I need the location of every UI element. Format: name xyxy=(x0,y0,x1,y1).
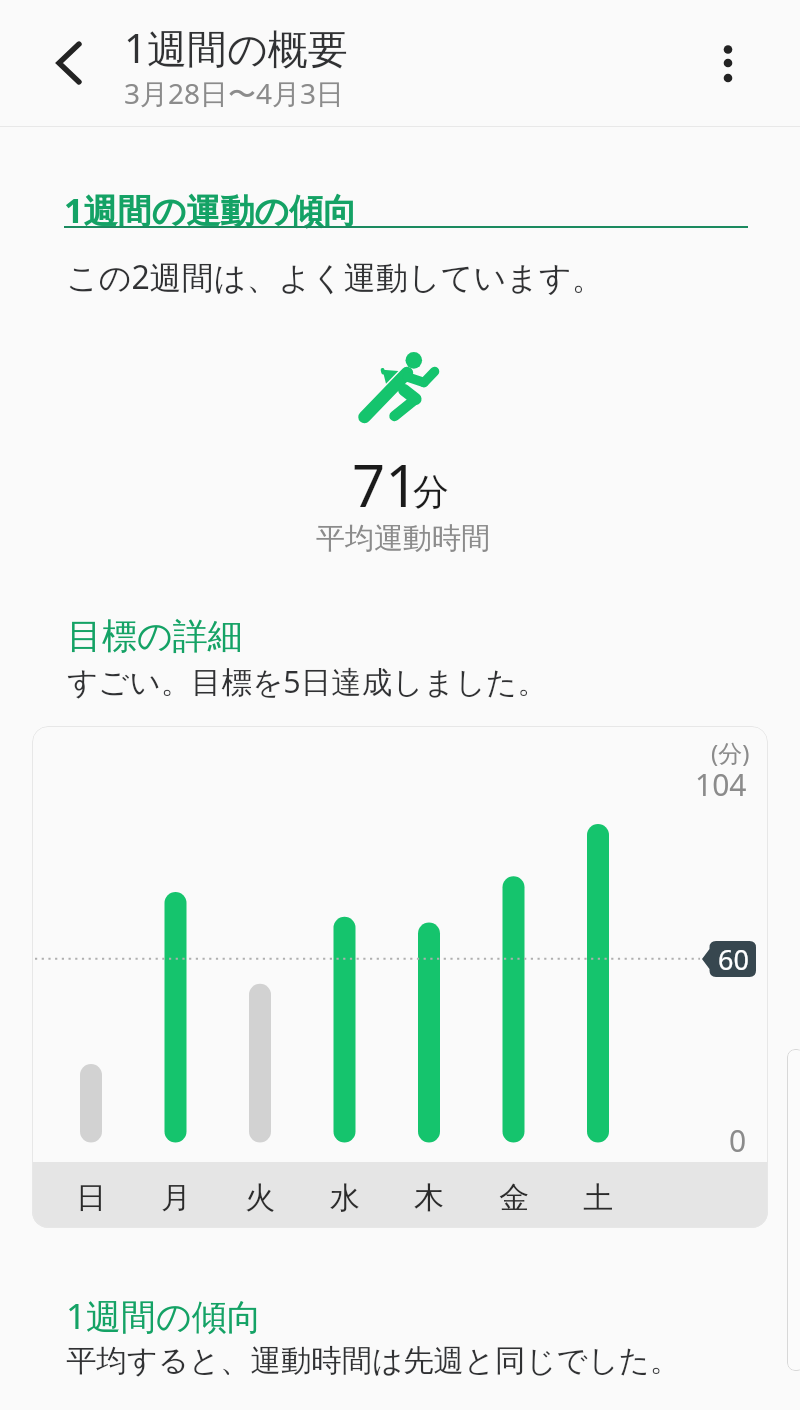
button[interactable]: More options xyxy=(698,28,758,88)
staticText: 目標の詳細 xyxy=(67,614,243,658)
button[interactable]: Back xyxy=(40,28,100,88)
staticText: 土 xyxy=(583,1179,613,1217)
staticText: 3月28日〜4月3日 xyxy=(124,74,345,112)
staticText: 104 xyxy=(695,764,747,805)
staticText: 火 xyxy=(245,1179,275,1217)
staticText: 水 xyxy=(330,1179,360,1217)
staticText: 1週間の傾向 xyxy=(66,1292,262,1340)
staticText: 60 xyxy=(718,941,749,977)
staticText: 金 xyxy=(499,1179,529,1217)
staticText: 平均すると、運動時間は先週と同じでした。 xyxy=(66,1342,681,1380)
staticText: 1週間の概要 xyxy=(124,20,348,75)
staticText: 木 xyxy=(414,1179,444,1217)
staticText: この2週間は、よく運動しています。 xyxy=(66,255,604,299)
staticText: 1週間の運動の傾向 xyxy=(64,187,358,233)
staticText: 日 xyxy=(76,1179,106,1217)
staticText: すごい。目標を5日達成しました。 xyxy=(67,660,548,702)
staticText: 0 xyxy=(729,1120,747,1161)
staticText: 分 xyxy=(413,469,449,514)
staticText: 平均運動時間 xyxy=(316,520,490,557)
staticText: (分) xyxy=(711,736,750,769)
staticText: 71 xyxy=(352,445,419,524)
staticText: 月 xyxy=(161,1179,191,1217)
